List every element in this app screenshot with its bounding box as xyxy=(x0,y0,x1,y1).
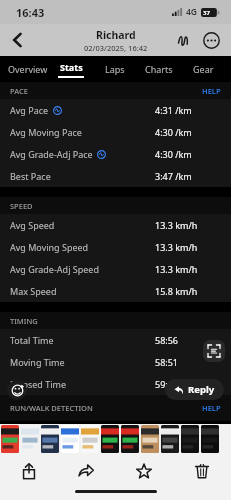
button[interactable]: Reply xyxy=(165,379,224,400)
staticText: Avg Moving Speed xyxy=(10,241,89,253)
staticText: 13.3 km/h xyxy=(155,219,198,231)
button[interactable]: Add reaction xyxy=(7,380,27,400)
button[interactable]: Favorite xyxy=(115,456,173,486)
button[interactable]: Avg Moving Speed xyxy=(0,236,231,258)
button[interactable] xyxy=(21,425,39,453)
staticText: HELP xyxy=(202,403,221,413)
button[interactable]: Moving Time xyxy=(0,351,231,373)
staticText: RUN/WALK DETECTION xyxy=(10,403,93,413)
staticText: Avg Moving Pace xyxy=(10,126,82,138)
staticText: 4G xyxy=(186,6,198,18)
staticText: TIMING xyxy=(10,316,38,326)
staticText: 15.8 km/h xyxy=(155,285,198,297)
staticText: 13.3 km/h xyxy=(155,241,198,253)
button[interactable]: More options xyxy=(197,26,225,54)
staticText: Avg Grade-Adj Pace xyxy=(10,148,93,160)
button[interactable] xyxy=(81,425,99,453)
button[interactable] xyxy=(101,425,119,453)
staticText: 02/03/2025, 16:42 xyxy=(84,43,148,53)
staticText: 13.3 km/h xyxy=(155,263,198,275)
button[interactable]: Forward xyxy=(57,456,115,486)
button[interactable]: Best Pace xyxy=(0,165,231,187)
button[interactable]: Avg Pace xyxy=(0,99,231,121)
staticText: Richard xyxy=(96,28,136,42)
button[interactable]: Markup xyxy=(169,26,197,54)
staticText: Max Speed xyxy=(10,285,57,297)
button[interactable]: Avg Grade-Adj Pace xyxy=(0,143,231,165)
staticText: PACE xyxy=(10,86,28,96)
button[interactable] xyxy=(41,425,59,453)
button[interactable]: Elapsed Time xyxy=(0,373,231,395)
button[interactable]: Avg Moving Pace xyxy=(0,121,231,143)
button[interactable] xyxy=(121,425,139,453)
button[interactable]: Laps xyxy=(93,56,137,82)
staticText: Best Pace xyxy=(10,170,51,182)
staticText: SPEED xyxy=(10,201,33,211)
button[interactable]: Gear xyxy=(181,56,225,82)
button[interactable] xyxy=(61,425,79,453)
staticText: Avg Pace xyxy=(10,104,49,116)
staticText: Moving Time xyxy=(10,356,65,368)
button[interactable]: Avg Speed xyxy=(0,214,231,236)
button[interactable]: Share xyxy=(0,456,57,486)
staticText: 3:47 /km xyxy=(155,170,192,182)
button[interactable]: HELP xyxy=(202,86,221,96)
staticText: Stats xyxy=(60,61,83,73)
button[interactable] xyxy=(161,425,179,453)
staticText: Charts xyxy=(145,63,173,75)
staticText: 4:30 /km xyxy=(155,148,192,160)
staticText: 59:42 xyxy=(155,378,179,390)
button[interactable]: Stats xyxy=(49,56,93,82)
staticText: Avg Grade-Adj Speed xyxy=(10,263,99,275)
staticText: Gear xyxy=(193,63,214,75)
staticText: 58:56 xyxy=(155,334,179,346)
staticText: 4:30 /km xyxy=(155,126,192,138)
button[interactable] xyxy=(181,425,199,453)
button[interactable]: Back xyxy=(0,24,34,56)
button[interactable]: Delete xyxy=(173,456,231,486)
button[interactable]: Avg Grade-Adj Speed xyxy=(0,258,231,280)
staticText: 4:31 /km xyxy=(155,104,192,116)
staticText: Reply xyxy=(188,383,215,396)
staticText: 37 xyxy=(203,9,210,17)
button[interactable] xyxy=(201,425,219,453)
staticText: 16:43 xyxy=(16,5,45,20)
button[interactable] xyxy=(1,425,19,453)
button[interactable]: Max Speed xyxy=(0,280,231,302)
staticText: Laps xyxy=(105,63,125,75)
button[interactable] xyxy=(141,425,159,453)
staticText: Elapsed Time xyxy=(10,378,66,390)
staticText: Overview xyxy=(8,63,48,75)
staticText: Total Time xyxy=(10,334,54,346)
button[interactable]: Scan text xyxy=(203,340,225,362)
button[interactable]: Overview xyxy=(6,56,49,82)
button[interactable]: Charts xyxy=(137,56,181,82)
staticText: Avg Speed xyxy=(10,219,55,231)
staticText: 58:51 xyxy=(155,356,179,368)
button[interactable]: Total Time xyxy=(0,329,231,351)
